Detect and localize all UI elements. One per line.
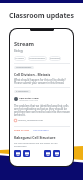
staticText: Kakegurui Cell Structure bbox=[14, 135, 56, 140]
staticText: All Topics bbox=[15, 57, 25, 60]
button[interactable]: All Topics bbox=[14, 56, 26, 61]
button[interactable]: Open slides bbox=[44, 150, 51, 157]
staticText: The problem that we identified was that … bbox=[14, 104, 70, 116]
button[interactable]: Add Comment bbox=[33, 129, 49, 132]
button[interactable]: Open presentation bbox=[14, 150, 21, 157]
button[interactable]: Share to Class bbox=[14, 129, 30, 132]
button[interactable]: Classwork bbox=[49, 56, 61, 61]
staticText: What should happen for this cell to divi… bbox=[14, 78, 70, 84]
staticText: Announcement bbox=[16, 66, 32, 69]
staticText: Announcements bbox=[29, 57, 46, 60]
button[interactable]: Open sheet bbox=[53, 150, 60, 157]
staticText: Stream bbox=[14, 40, 35, 48]
staticText: Classroom updates bbox=[9, 11, 74, 21]
staticText: Add Comment bbox=[33, 129, 49, 132]
staticText: Yesterday 10:24 PM bbox=[19, 99, 39, 102]
button[interactable]: Announcements bbox=[28, 56, 47, 61]
staticText: Abernathy Craig bbox=[19, 96, 39, 99]
staticText: Classwork bbox=[50, 57, 60, 60]
staticText: mitosis_celldivision.pdf bbox=[18, 119, 43, 122]
staticText: Biology bbox=[14, 49, 24, 53]
staticText: 2 comments bbox=[16, 90, 29, 93]
staticText: Share to Class bbox=[14, 129, 30, 132]
staticText: Cell Division - Meiosis bbox=[14, 72, 51, 77]
button[interactable]: Open document bbox=[23, 150, 30, 157]
staticText: Do you know what are the types of cell s… bbox=[14, 141, 70, 147]
